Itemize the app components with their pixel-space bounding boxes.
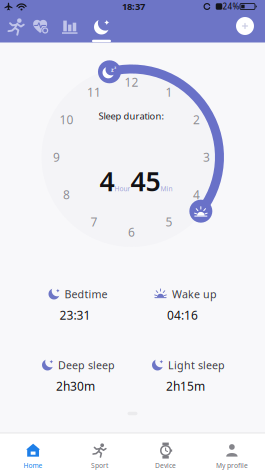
staticText: z <box>114 64 116 70</box>
staticText: 18:37 <box>122 0 145 13</box>
staticText: 10 <box>59 111 73 127</box>
staticText: 24% <box>222 1 239 12</box>
button[interactable]: Home <box>3 441 63 471</box>
button[interactable]: Sport <box>69 441 129 471</box>
staticText: Wake up <box>172 287 217 301</box>
staticText: 1 <box>165 84 172 100</box>
staticText: Sleep duration: <box>98 110 164 122</box>
staticText: 9 <box>53 149 60 165</box>
staticText: Home <box>24 461 43 470</box>
button[interactable]: Add <box>236 17 254 35</box>
staticText: Sport <box>91 461 108 470</box>
staticText: 45 <box>130 163 160 199</box>
staticText: 6 <box>128 224 135 240</box>
button[interactable]: Health <box>30 15 52 39</box>
staticText: Deep sleep <box>58 358 115 372</box>
button[interactable]: Bedtime handle <box>98 60 121 83</box>
button[interactable]: Device <box>136 441 196 471</box>
button[interactable]: Sleep <box>90 15 112 39</box>
staticText: Device <box>155 461 176 470</box>
staticText: 2h30m <box>56 378 95 394</box>
staticText: 04:16 <box>167 307 198 323</box>
staticText: 2h15m <box>166 378 205 394</box>
staticText: Min <box>160 184 172 193</box>
staticText: 23:31 <box>59 307 90 323</box>
button[interactable]: Activity <box>5 15 27 39</box>
staticText: 11 <box>87 84 101 100</box>
staticText: 4 <box>193 186 200 202</box>
staticText: My profile <box>216 461 248 470</box>
staticText: 5 <box>165 214 172 230</box>
button[interactable]: My profile <box>202 441 262 471</box>
staticText: 8 <box>63 186 70 202</box>
button[interactable]: Statistics <box>59 15 81 39</box>
staticText: 7 <box>90 214 97 230</box>
staticText: 2 <box>193 111 200 127</box>
staticText: 12 <box>124 74 138 90</box>
staticText: 3 <box>203 149 210 165</box>
button[interactable]: Wake up handle <box>189 200 212 223</box>
staticText: Hour <box>114 184 130 193</box>
staticText: Bedtime <box>64 287 107 301</box>
staticText: 4 <box>99 163 114 199</box>
staticText: z <box>111 66 114 73</box>
staticText: Light sleep <box>168 358 225 372</box>
